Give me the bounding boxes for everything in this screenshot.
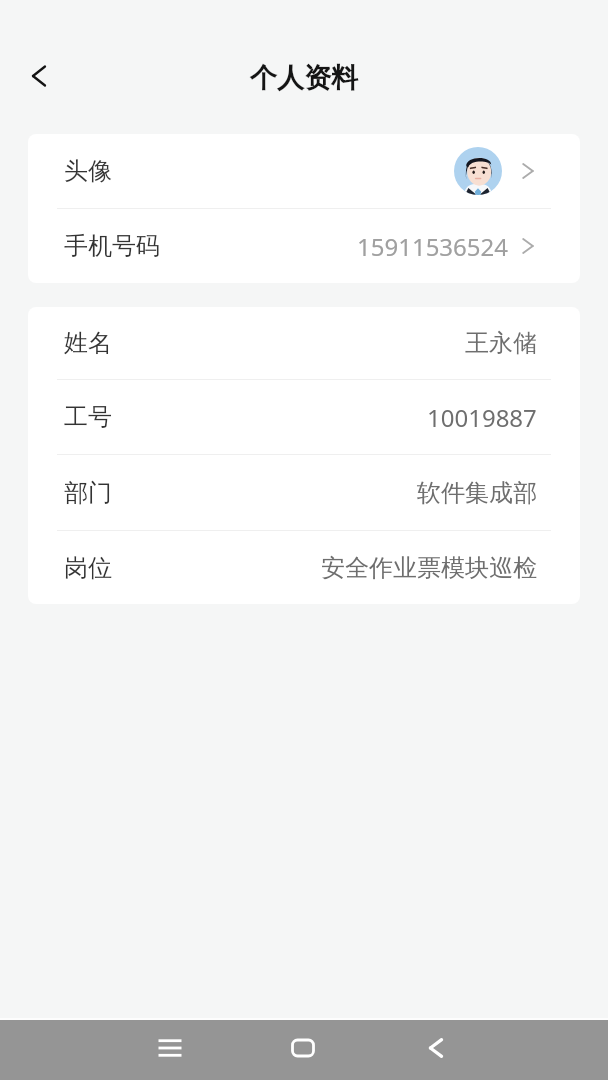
button[interactable]: Recent apps bbox=[142, 1020, 198, 1076]
button[interactable]: 头像 bbox=[28, 134, 580, 208]
staticText: 岗位 bbox=[64, 553, 112, 583]
button[interactable]: Back bbox=[15, 52, 63, 100]
staticText: 15911536524 bbox=[357, 230, 509, 263]
staticText: 王永储 bbox=[465, 328, 537, 358]
staticText: 头像 bbox=[64, 156, 112, 186]
button[interactable]: 姓名 bbox=[28, 307, 580, 379]
staticText: 10019887 bbox=[427, 401, 537, 434]
staticText: 个人资料 bbox=[250, 61, 358, 95]
staticText: 安全作业票模块巡检 bbox=[321, 553, 537, 583]
button[interactable]: 部门 bbox=[28, 455, 580, 530]
staticText: 工号 bbox=[64, 402, 112, 432]
button[interactable]: 岗位 bbox=[28, 531, 580, 604]
button[interactable]: Home bbox=[275, 1020, 331, 1076]
button[interactable]: Back bbox=[408, 1020, 464, 1076]
button[interactable]: 手机号码 bbox=[28, 209, 580, 283]
button[interactable]: 工号 bbox=[28, 380, 580, 454]
staticText: 软件集成部 bbox=[417, 478, 537, 508]
staticText: 手机号码 bbox=[64, 231, 160, 261]
staticText: 姓名 bbox=[64, 328, 112, 358]
staticText: 部门 bbox=[64, 478, 112, 508]
